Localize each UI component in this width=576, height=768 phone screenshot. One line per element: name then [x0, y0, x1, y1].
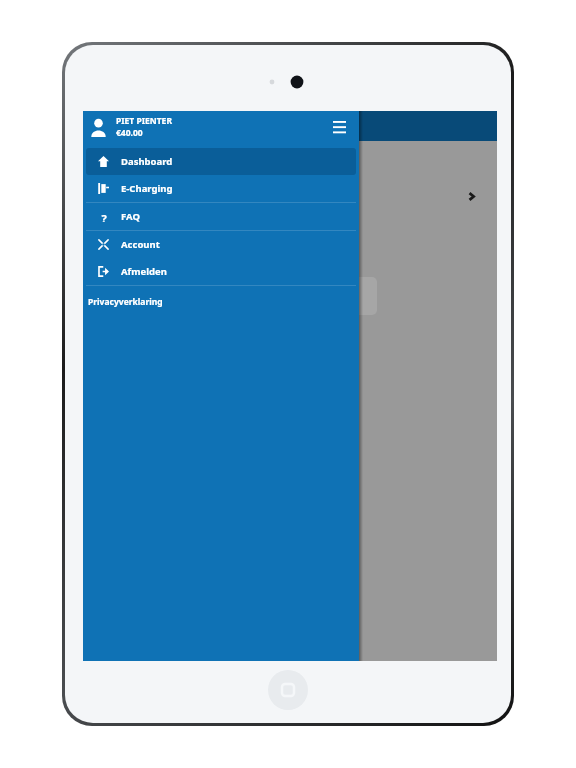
- staticText: ?: [101, 211, 107, 222]
- staticText: Privacyverklaring: [88, 296, 163, 308]
- button[interactable]: [83, 176, 497, 216]
- button[interactable]: Account: [86, 231, 356, 258]
- button[interactable]: Privacyverklaring: [83, 286, 359, 318]
- button[interactable]: Dashboard: [86, 148, 356, 175]
- button[interactable]: Menu: [325, 113, 353, 141]
- button[interactable]: Afmelden: [86, 258, 356, 285]
- staticText: €40.00: [116, 127, 143, 139]
- staticText: FAQ: [121, 210, 140, 223]
- button[interactable]: ?: [86, 203, 356, 230]
- button[interactable]: Home: [268, 670, 308, 710]
- staticText: Afmelden: [121, 265, 167, 278]
- button[interactable]: E-Charging: [86, 175, 356, 202]
- staticText: Account: [121, 238, 160, 251]
- staticText: E-Charging: [121, 182, 173, 195]
- button[interactable]: PIET PIENTER: [83, 111, 359, 143]
- staticText: Dashboard: [121, 155, 173, 168]
- staticText: PIET PIENTER: [116, 115, 172, 127]
- button[interactable]: [89, 277, 377, 315]
